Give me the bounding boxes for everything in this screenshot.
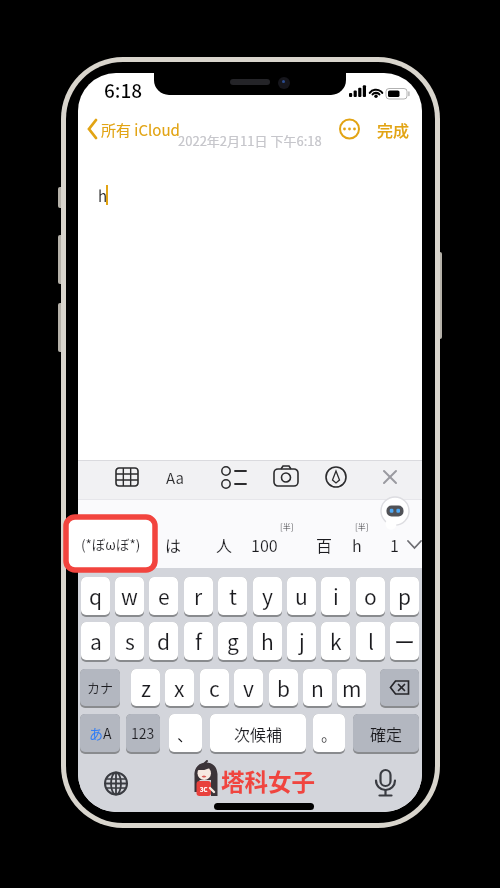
staticText: g (227, 626, 239, 656)
button[interactable]: x (165, 669, 194, 706)
button[interactable]: z (131, 669, 160, 706)
button[interactable] (371, 767, 401, 797)
staticText: 123 (131, 723, 155, 743)
staticText: 。 (321, 722, 338, 745)
button[interactable]: o (356, 577, 385, 615)
button[interactable]: n (303, 669, 332, 706)
button[interactable]: r (184, 577, 213, 615)
staticText: 2022年2月11日 下午6:18 (178, 131, 322, 150)
button[interactable] (394, 531, 420, 555)
staticText: w (121, 581, 138, 611)
button[interactable]: k (321, 622, 350, 660)
staticText: z (141, 673, 151, 703)
button[interactable]: m (337, 669, 366, 706)
staticText: n (311, 673, 324, 703)
button[interactable]: Aa (166, 467, 184, 489)
button[interactable]: 100 (251, 533, 278, 556)
button[interactable]: e (149, 577, 178, 615)
button[interactable]: あ (80, 714, 120, 752)
staticText: b (277, 673, 290, 703)
button[interactable]: 123 (126, 714, 160, 752)
button[interactable]: a (81, 622, 110, 660)
button[interactable] (322, 463, 350, 491)
button[interactable]: (*ぼωぼ*) (66, 517, 155, 570)
button[interactable]: g (218, 622, 247, 660)
button[interactable]: w (115, 577, 144, 615)
staticText: (*ぼωぼ*) (81, 534, 141, 554)
button[interactable]: は (165, 533, 182, 556)
staticText: カナ (87, 678, 114, 697)
staticText: 3C (200, 785, 208, 794)
button[interactable] (102, 769, 130, 797)
staticText: 6:18 (104, 76, 143, 104)
staticText: ー (394, 626, 415, 656)
staticText: m (342, 673, 362, 703)
button[interactable]: f (184, 622, 213, 660)
button[interactable] (212, 463, 242, 491)
button[interactable]: c (200, 669, 229, 706)
button[interactable]: l (356, 622, 385, 660)
staticText: l (368, 626, 374, 656)
button[interactable] (381, 497, 409, 525)
staticText: p (398, 581, 412, 611)
button[interactable]: 塔科女子 (221, 764, 315, 798)
staticText: e (158, 581, 170, 611)
button[interactable]: カナ (80, 669, 120, 706)
button[interactable]: u (287, 577, 316, 615)
button[interactable]: s (115, 622, 144, 660)
staticText: [半] (355, 521, 369, 533)
button[interactable] (376, 463, 404, 491)
staticText: c (209, 673, 220, 703)
button[interactable] (380, 669, 419, 706)
staticText: q (89, 581, 103, 611)
staticText: r (194, 581, 203, 611)
button[interactable]: i (321, 577, 350, 615)
button[interactable]: h (253, 622, 282, 660)
button[interactable]: h (352, 533, 362, 556)
button[interactable]: b (269, 669, 298, 706)
staticText: 次候補 (234, 722, 283, 745)
staticText: d (157, 626, 171, 656)
button[interactable]: t (218, 577, 247, 615)
button[interactable]: 完成 (377, 118, 410, 141)
staticText: v (243, 673, 254, 703)
staticText: j (299, 626, 305, 656)
button[interactable]: p (390, 577, 419, 615)
staticText: 、 (177, 722, 194, 745)
button[interactable]: 次候補 (210, 714, 306, 752)
button[interactable] (270, 463, 302, 491)
staticText: h (98, 185, 108, 207)
button[interactable]: d (149, 622, 178, 660)
staticText: 確定 (370, 722, 403, 745)
staticText: x (174, 673, 185, 703)
staticText: s (125, 626, 135, 656)
staticText: y (262, 581, 273, 611)
button[interactable] (112, 463, 142, 491)
button[interactable]: q (81, 577, 110, 615)
button[interactable]: 確定 (353, 714, 419, 752)
staticText: k (330, 626, 342, 656)
button[interactable]: j (287, 622, 316, 660)
staticText: [半] (280, 521, 294, 533)
staticText: i (333, 581, 339, 611)
button[interactable]: 。 (313, 714, 345, 752)
staticText: あ (89, 723, 103, 743)
button[interactable]: v (234, 669, 263, 706)
staticText: h (261, 626, 274, 656)
button[interactable]: ー (390, 622, 419, 660)
staticText: f (195, 626, 202, 656)
button[interactable]: 百 (316, 533, 333, 556)
button[interactable]: 所有 iCloud (101, 119, 180, 141)
staticText: u (295, 581, 308, 611)
button[interactable]: y (253, 577, 282, 615)
button[interactable]: 、 (169, 714, 202, 752)
button[interactable]: 1 (390, 533, 399, 556)
staticText: A (103, 723, 112, 743)
button[interactable]: 人 (216, 533, 233, 556)
staticText: a (90, 626, 102, 656)
staticText: t (229, 581, 237, 611)
staticText: o (364, 581, 377, 611)
